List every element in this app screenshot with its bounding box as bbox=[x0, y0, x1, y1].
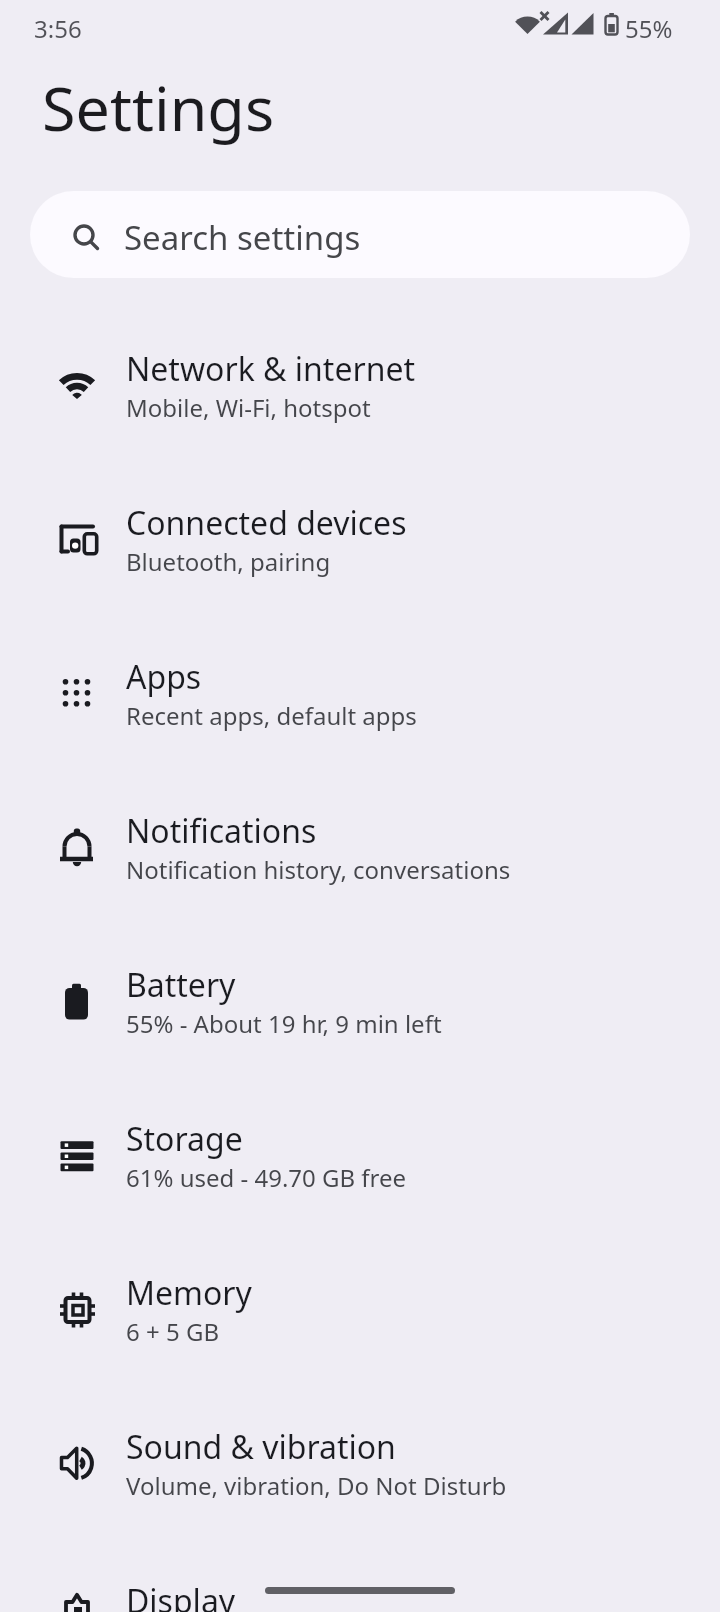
staticText: Storage bbox=[126, 1117, 243, 1161]
staticText: Recent apps, default apps bbox=[126, 699, 417, 732]
staticText: 61% used - 49.70 GB free bbox=[126, 1161, 407, 1194]
staticText: 55% bbox=[625, 12, 673, 45]
button[interactable]: Display bbox=[0, 1540, 720, 1612]
button[interactable]: Notifications bbox=[0, 770, 720, 924]
button[interactable]: Connected devices bbox=[0, 462, 720, 616]
staticText: Settings bbox=[42, 66, 275, 149]
staticText: Battery bbox=[126, 963, 236, 1007]
button[interactable]: Network & internet bbox=[0, 308, 720, 462]
button[interactable]: Memory bbox=[0, 1232, 720, 1386]
button[interactable]: Apps bbox=[0, 616, 720, 770]
button[interactable]: Sound & vibration bbox=[0, 1386, 720, 1540]
staticText: 3:56 bbox=[34, 12, 82, 45]
staticText: Search settings bbox=[124, 215, 361, 260]
staticText: Mobile, Wi-Fi, hotspot bbox=[126, 391, 371, 424]
button[interactable]: Search settings bbox=[30, 191, 690, 278]
staticText: Sound & vibration bbox=[126, 1425, 396, 1469]
staticText: Notifications bbox=[126, 809, 317, 853]
button[interactable]: Storage bbox=[0, 1078, 720, 1232]
staticText: 6 + 5 GB bbox=[126, 1315, 219, 1348]
staticText: Volume, vibration, Do Not Disturb bbox=[126, 1469, 507, 1502]
staticText: Network & internet bbox=[126, 347, 416, 391]
button[interactable]: Battery bbox=[0, 924, 720, 1078]
staticText: Memory bbox=[126, 1271, 252, 1315]
staticText: 55% - About 19 hr, 9 min left bbox=[126, 1007, 442, 1040]
staticText: Connected devices bbox=[126, 501, 407, 545]
staticText: Notification history, conversations bbox=[126, 853, 511, 886]
staticText: Bluetooth, pairing bbox=[126, 545, 331, 578]
staticText: Apps bbox=[126, 655, 202, 699]
staticText: Display bbox=[126, 1579, 236, 1612]
